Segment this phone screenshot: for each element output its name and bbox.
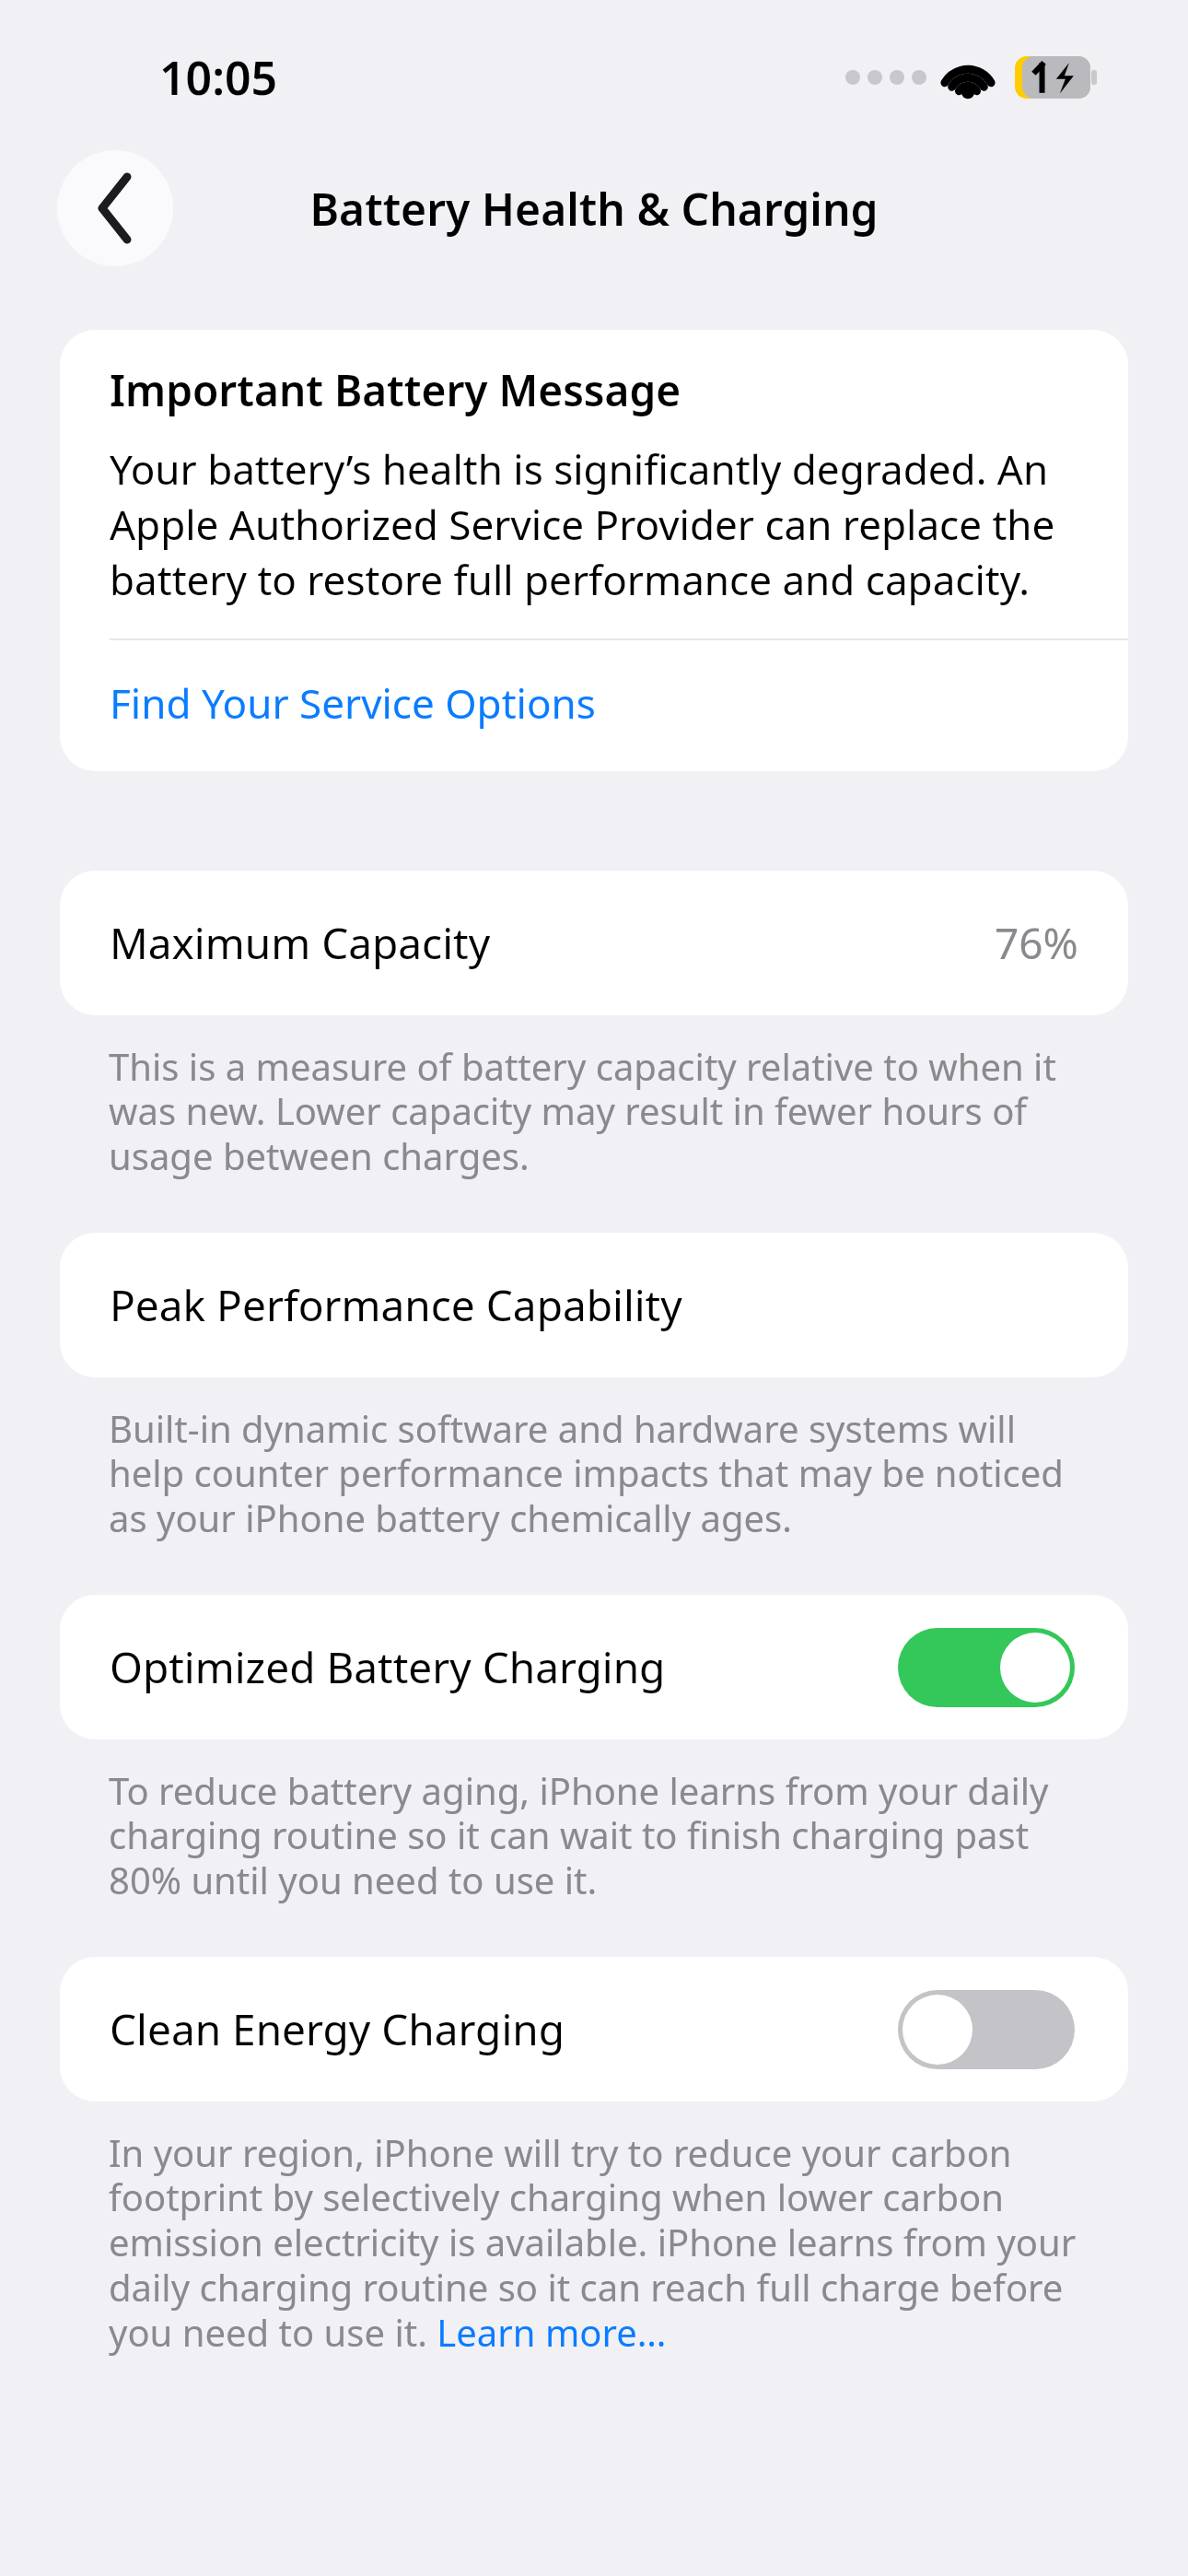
button[interactable]: Maximum Capacity	[60, 871, 1128, 1015]
staticText: This is a measure of battery capacity re…	[109, 1041, 1087, 1181]
button[interactable]: Optimized Battery Charging	[60, 1595, 1128, 1739]
button[interactable]: Toggle off	[898, 1990, 1075, 2069]
staticText: To reduce battery aging, iPhone learns f…	[109, 1765, 1087, 1905]
staticText: 76%	[995, 914, 1078, 972]
staticText: Peak Performance Capability	[110, 1276, 682, 1334]
staticText: Optimized Battery Charging	[110, 1638, 666, 1696]
button[interactable]: Peak Performance Capability	[60, 1233, 1128, 1377]
staticText: 10:05	[159, 46, 278, 109]
staticText: Important Battery Message	[110, 361, 681, 419]
button[interactable]: Clean Energy Charging	[60, 1957, 1128, 2102]
button[interactable]: Toggle on	[898, 1628, 1075, 1707]
staticText: Clean Energy Charging	[110, 2000, 565, 2058]
staticText: Built-in dynamic software and hardware s…	[109, 1403, 1087, 1543]
staticText: Find Your Service Options	[110, 675, 596, 731]
staticText: Maximum Capacity	[110, 914, 491, 972]
button[interactable]: Find Your Service Options	[60, 640, 1128, 771]
staticText: In your region, iPhone will try to reduc…	[109, 2127, 1096, 2358]
staticText: Battery Health & Charging	[309, 179, 879, 239]
button[interactable]: Back	[57, 150, 173, 266]
staticText: Your battery’s health is significantly d…	[110, 441, 1078, 607]
